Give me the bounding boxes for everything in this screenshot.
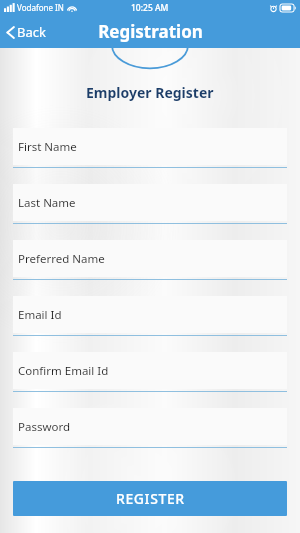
button[interactable]: Preferred Name	[13, 240, 287, 280]
staticText: Employer Register	[86, 83, 214, 102]
other: Back	[6, 25, 15, 40]
button[interactable]: Confirm Email Id	[13, 352, 287, 392]
button[interactable]: Password	[13, 408, 287, 448]
staticText: Last Name	[18, 195, 76, 211]
staticText: Back	[17, 23, 46, 41]
button[interactable]: Last Name	[13, 184, 287, 224]
staticText: Confirm Email Id	[18, 363, 109, 379]
button[interactable]: Back	[4, 20, 48, 44]
button[interactable]: First Name	[13, 128, 287, 168]
staticText: REGISTER	[116, 489, 185, 508]
button[interactable]: Email Id	[13, 296, 287, 336]
button[interactable]: REGISTER	[13, 481, 287, 516]
staticText: First Name	[18, 139, 77, 155]
staticText: Password	[18, 419, 71, 435]
staticText: Email Id	[18, 307, 62, 323]
staticText: Vodafone IN	[17, 2, 64, 13]
staticText: Preferred Name	[18, 251, 105, 267]
staticText: Registration	[98, 20, 203, 43]
staticText: 10:25 AM	[131, 2, 169, 14]
